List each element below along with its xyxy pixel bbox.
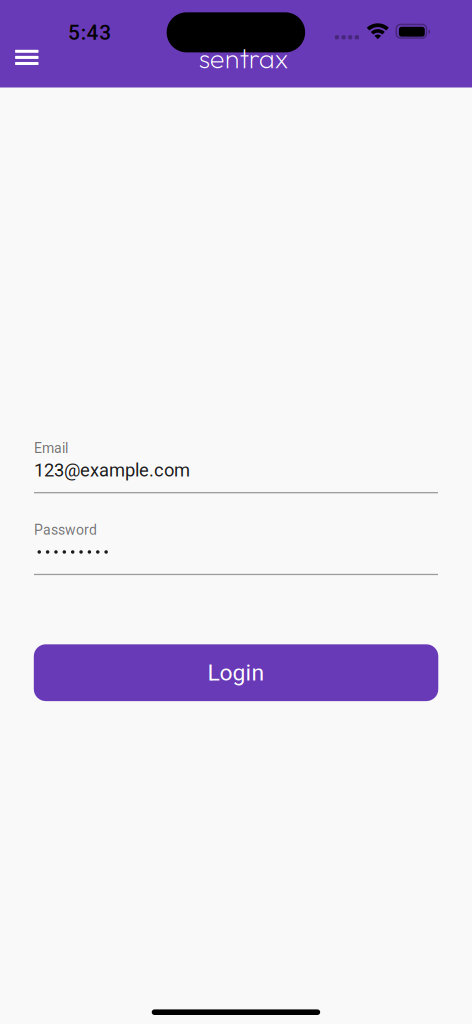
button[interactable]: Email bbox=[34, 441, 438, 493]
staticText: Email bbox=[34, 440, 68, 456]
staticText: Login bbox=[208, 659, 265, 686]
staticText: Password bbox=[34, 522, 97, 538]
staticText: sentrax bbox=[199, 41, 288, 75]
button[interactable]: Login bbox=[34, 644, 438, 701]
button[interactable]: Password bbox=[34, 523, 438, 575]
staticText: 123@example.com bbox=[34, 459, 190, 481]
button[interactable]: Open navigation menu bbox=[3, 33, 51, 81]
staticText: 5:43 bbox=[68, 20, 111, 45]
